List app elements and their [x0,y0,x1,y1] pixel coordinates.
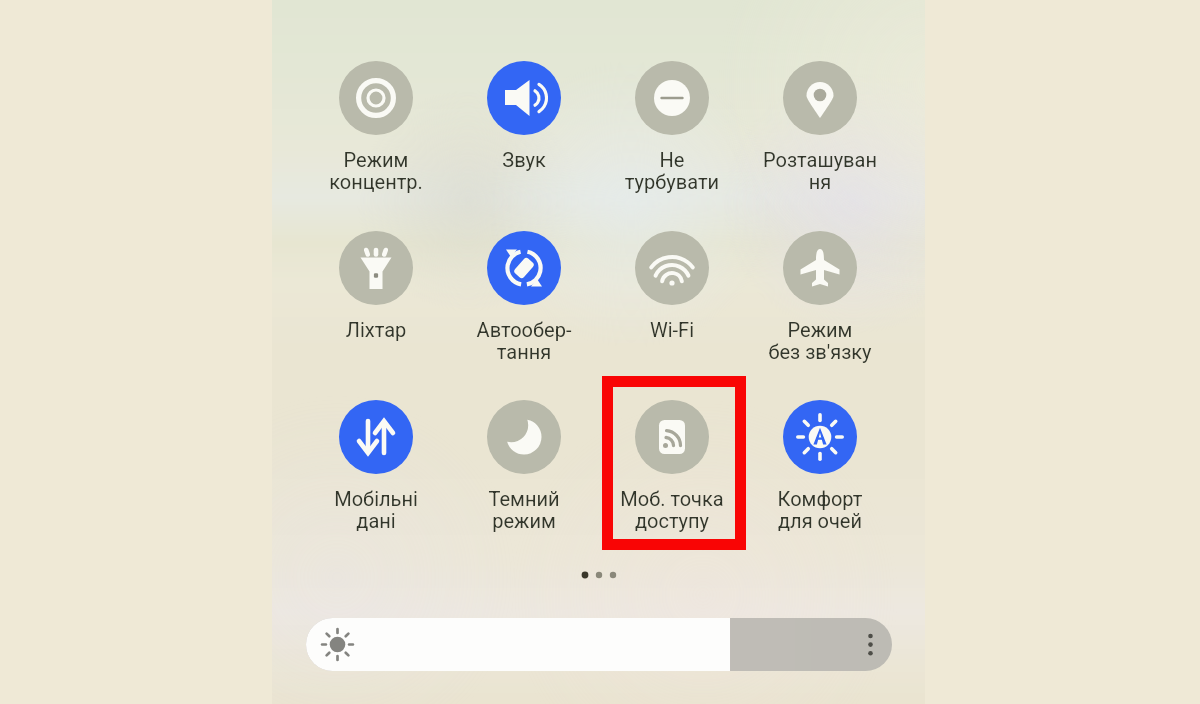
other: Автообер-тання [487,231,561,305]
staticText: Звук [450,148,598,171]
staticText: Автообер- тання [450,318,598,364]
staticText: Режим концентр. [302,148,450,194]
staticText: Комфорт для очей [746,487,894,533]
button[interactable]: Режимбез зв'язку [746,231,894,364]
button[interactable]: Wi-Fi [598,231,746,341]
button[interactable]: Режимконцентр. [302,61,450,194]
staticText: Розташуван ня [746,148,894,194]
staticText: Не турбувати [598,148,746,194]
button[interactable]: Ліхтар [302,231,450,341]
staticText: Моб. точка доступу [598,487,746,533]
staticText: Мобільні дані [302,487,450,533]
other: Нетурбувати [635,61,709,135]
button[interactable]: Звук [450,61,598,171]
staticText: Wi-Fi [598,318,746,341]
staticText: Режим без зв'язку [746,318,894,364]
button[interactable]: Автообер-тання [450,231,598,364]
staticText: Темний режим [450,487,598,533]
other: Комфортдля очей [783,400,857,474]
button[interactable]: Нетурбувати [598,61,746,194]
other: Розташування [783,61,857,135]
button[interactable]: Яскравість [306,618,892,671]
button[interactable]: Мобільнідані [302,400,450,533]
button[interactable]: Моб. точкадоступу [598,400,746,533]
staticText: Ліхтар [302,318,450,341]
button[interactable]: Темнийрежим [450,400,598,533]
button[interactable]: Розташування [746,61,894,194]
other: Звук [487,61,561,135]
other: Мобільнідані [339,400,413,474]
other: Режимконцентр. [339,61,413,135]
other: Моб. точкадоступу [635,400,709,474]
other: Ліхтар [339,231,413,305]
other: Wi-Fi [635,231,709,305]
button[interactable]: Комфортдля очей [746,400,894,533]
other: Темнийрежим [487,400,561,474]
other: Режимбез зв'язку [783,231,857,305]
